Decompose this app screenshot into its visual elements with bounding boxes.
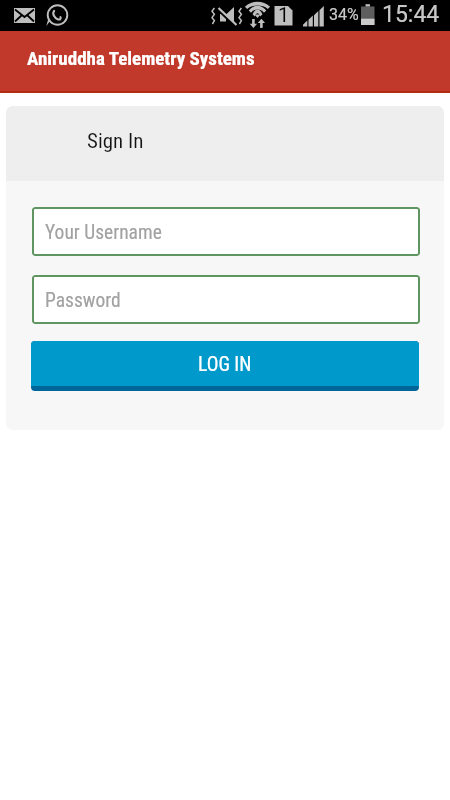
staticText: 1 xyxy=(278,3,290,26)
staticText: Password xyxy=(45,289,121,312)
staticText: Your Username xyxy=(45,221,162,244)
staticText: 34% xyxy=(329,5,359,24)
staticText: Aniruddha Telemetry Systems xyxy=(27,47,255,69)
staticText: LOG IN xyxy=(198,353,252,376)
button[interactable]: LOG IN xyxy=(31,341,419,391)
button[interactable]: Your Username xyxy=(32,207,420,256)
staticText: Sign In xyxy=(87,129,144,154)
button[interactable]: Password xyxy=(32,275,420,324)
staticText: 15:44 xyxy=(382,1,440,28)
